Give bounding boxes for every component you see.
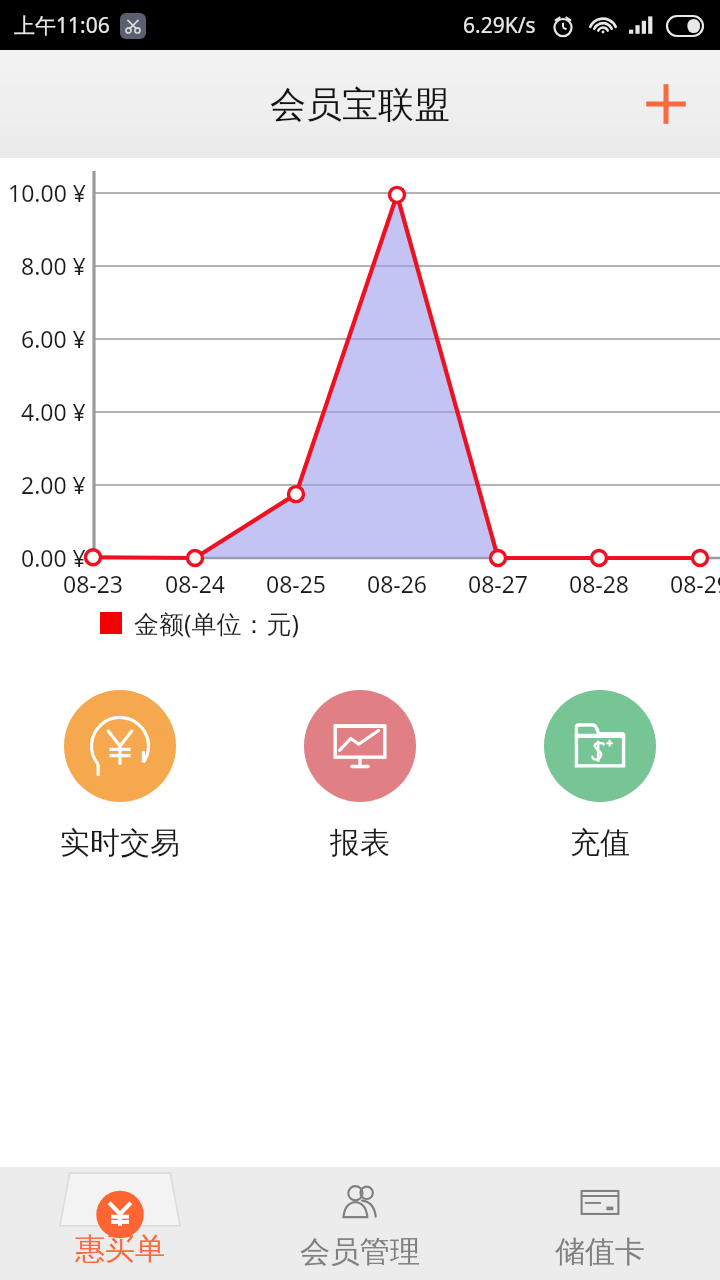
staticText: 08-28 bbox=[569, 568, 630, 599]
staticText: 6.00 ¥ bbox=[21, 323, 86, 354]
staticText: 08-29 bbox=[670, 568, 720, 599]
staticText: 0.00 ¥ bbox=[21, 542, 86, 573]
button[interactable]: 会员管理 bbox=[240, 1167, 480, 1280]
staticText: 6.29K/s bbox=[463, 11, 536, 40]
staticText: 08-27 bbox=[468, 568, 529, 599]
button[interactable]: 储值卡 bbox=[480, 1167, 720, 1280]
staticText: 会员宝联盟 bbox=[270, 82, 450, 127]
staticText: 2.00 ¥ bbox=[21, 469, 86, 500]
staticText: 08-26 bbox=[367, 568, 428, 599]
staticText: 08-25 bbox=[266, 568, 327, 599]
staticText: 惠买单 bbox=[75, 1230, 165, 1268]
button[interactable]: 充值 bbox=[480, 686, 720, 866]
staticText: 储值卡 bbox=[555, 1233, 645, 1271]
staticText: 8.00 ¥ bbox=[21, 250, 86, 281]
button[interactable]: 惠买单 bbox=[0, 1167, 240, 1280]
staticText: 08-23 bbox=[63, 568, 124, 599]
staticText: 08-24 bbox=[165, 568, 226, 599]
staticText: 会员管理 bbox=[300, 1233, 420, 1271]
staticText: 金额(单位：元) bbox=[134, 606, 300, 640]
button[interactable]: 实时交易 bbox=[0, 686, 240, 866]
staticText: 4.00 ¥ bbox=[21, 396, 86, 427]
staticText: 充值 bbox=[570, 824, 630, 862]
staticText: 报表 bbox=[330, 824, 390, 862]
button[interactable]: 报表 bbox=[240, 686, 480, 866]
button[interactable]: Add bbox=[638, 76, 694, 132]
staticText: 10.00 ¥ bbox=[8, 177, 86, 208]
staticText: 实时交易 bbox=[60, 824, 180, 862]
staticText: 上午11:06 bbox=[14, 11, 110, 40]
